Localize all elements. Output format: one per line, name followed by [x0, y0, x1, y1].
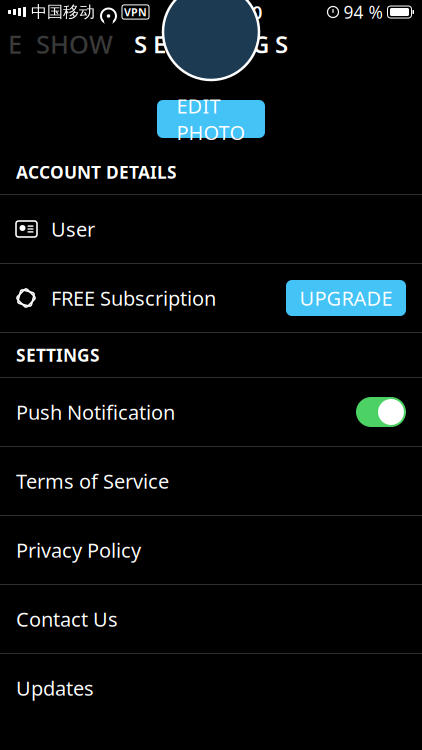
staticText: VPN — [124, 5, 147, 19]
staticText: 94 % — [343, 0, 382, 23]
button[interactable]: Push Notification — [0, 378, 422, 446]
button[interactable]: EDIT PHOTO — [157, 100, 265, 138]
staticText: 08:50 — [214, 0, 263, 24]
staticText: Contact Us — [16, 606, 118, 632]
button[interactable]: Push Notification — [356, 397, 406, 427]
staticText: E SHOW — [8, 27, 113, 61]
button[interactable]: Privacy Policy — [0, 516, 422, 584]
button[interactable]: Terms of Service — [0, 447, 422, 515]
staticText: 中国移动 — [31, 2, 95, 22]
staticText: Privacy Policy — [16, 537, 141, 563]
button[interactable]: Updates — [0, 654, 422, 722]
staticText: Terms of Service — [16, 468, 169, 494]
button[interactable]: UPGRADE — [286, 280, 406, 316]
button[interactable]: User — [0, 195, 422, 263]
staticText: Push Notification — [16, 399, 175, 425]
button[interactable]: FREE Subscription — [0, 264, 422, 332]
staticText: FREE Subscription — [51, 285, 216, 311]
button[interactable]: E SHOW — [4, 27, 117, 61]
staticText: ACCOUNT DETAILS — [16, 160, 177, 183]
staticText: User — [51, 216, 95, 242]
staticText: UPGRADE — [299, 285, 392, 311]
staticText: Updates — [16, 675, 94, 701]
staticText: SETTINGS — [16, 343, 100, 366]
staticText: S E T T I N G S — [134, 28, 288, 60]
staticText: EDIT PHOTO — [176, 92, 245, 145]
button[interactable]: Contact Us — [0, 585, 422, 653]
